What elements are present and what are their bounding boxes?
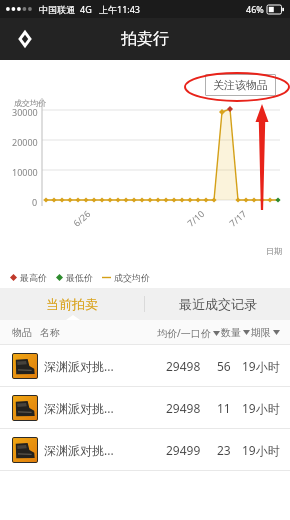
staticText: 均价/一口价 [157,326,211,340]
button[interactable]: 深渊派对挑... [0,429,290,470]
staticText: 中国联通 [39,4,75,15]
staticText: 19小时 [242,400,280,416]
staticText: 29499 [166,442,201,458]
staticText: 日期 [266,246,282,256]
staticText: 46% [246,3,264,15]
button[interactable]: 最近成交记录 [145,288,290,320]
staticText: 23 [217,442,231,458]
staticText: 56 [217,358,231,374]
staticText: 名称 [40,326,60,339]
staticText: 30000 [12,106,38,118]
staticText: 关注该物品 [213,78,268,92]
staticText: 10000 [12,166,38,178]
staticText: 数量 [221,326,241,339]
staticText: 成交均价 [114,272,150,283]
button[interactable]: 深渊派对挑... [0,345,290,386]
staticText: 19小时 [242,442,280,458]
staticText: 深渊派对挑... [44,442,114,458]
button[interactable]: 当前拍卖 [0,288,144,320]
staticText: 29498 [166,400,201,416]
staticText: 期限 [251,326,271,339]
button[interactable]: 均价/一口价 [157,326,220,340]
staticText: 物品 [12,326,32,339]
staticText: 深渊派对挑... [44,358,114,374]
button[interactable]: Menu [12,26,38,52]
button[interactable]: 期限 [251,326,280,339]
staticText: 最近成交记录 [179,296,257,312]
staticText: 上午11:43 [99,3,141,15]
staticText: 最高价 [20,272,47,283]
button[interactable]: 深渊派对挑... [0,387,290,428]
staticText: 20000 [12,136,38,148]
staticText: 成交均价 [14,98,46,108]
button[interactable]: 数量 [221,326,250,339]
staticText: 拍卖行 [121,29,169,49]
staticText: 7/17 [226,207,248,229]
staticText: 深渊派对挑... [44,400,114,416]
staticText: 0 [32,196,38,208]
staticText: 11 [217,400,231,416]
staticText: 19小时 [242,358,280,374]
button[interactable]: 关注该物品 [205,74,276,96]
staticText: 4G [80,3,92,15]
staticText: 7/10 [184,207,206,229]
staticText: 当前拍卖 [46,296,98,312]
staticText: 最低价 [66,272,93,283]
staticText: 6/26 [70,207,92,229]
staticText: 29498 [166,358,201,374]
